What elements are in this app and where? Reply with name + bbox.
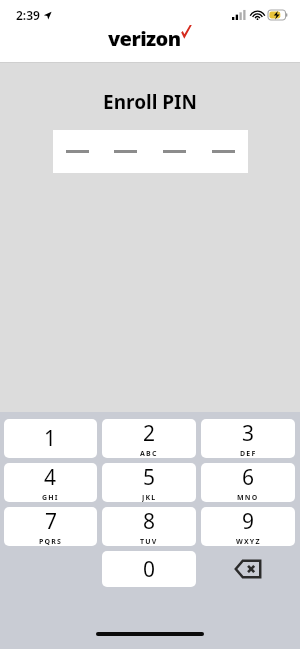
staticText: WXYZ (236, 537, 261, 546)
staticText: 3 (242, 419, 255, 448)
staticText: 9 (242, 507, 255, 536)
button[interactable]: 8 (102, 507, 196, 546)
button[interactable]: 7 (4, 507, 97, 546)
button[interactable]: 0 (102, 551, 196, 587)
staticText: 4 (44, 463, 57, 492)
staticText: verizon (108, 25, 181, 52)
staticText: 0 (143, 555, 156, 584)
button[interactable]: 3 (201, 419, 295, 458)
button[interactable]: 1 (4, 419, 97, 458)
staticText: GHI (42, 493, 59, 502)
button[interactable]: 9 (201, 507, 295, 546)
button[interactable]: 4 (4, 463, 97, 502)
staticText: MNO (237, 493, 259, 502)
staticText: JKL (142, 493, 157, 502)
staticText: ABC (140, 449, 158, 458)
button[interactable]: Delete (201, 551, 295, 587)
staticText: 8 (143, 507, 156, 536)
button[interactable]: 6 (201, 463, 295, 502)
staticText: 1 (44, 424, 57, 453)
staticText: 7 (45, 507, 58, 536)
staticText: 5 (143, 463, 156, 492)
staticText: 2 (143, 419, 156, 448)
staticText: 2:39 (16, 7, 40, 23)
button[interactable]: 5 (102, 463, 196, 502)
staticText: 6 (242, 463, 255, 492)
staticText: DEF (240, 449, 257, 458)
button[interactable]: 2 (102, 419, 196, 458)
staticText: TUV (140, 537, 158, 546)
staticText: Enroll PIN (103, 89, 197, 115)
staticText: PQRS (39, 537, 63, 546)
